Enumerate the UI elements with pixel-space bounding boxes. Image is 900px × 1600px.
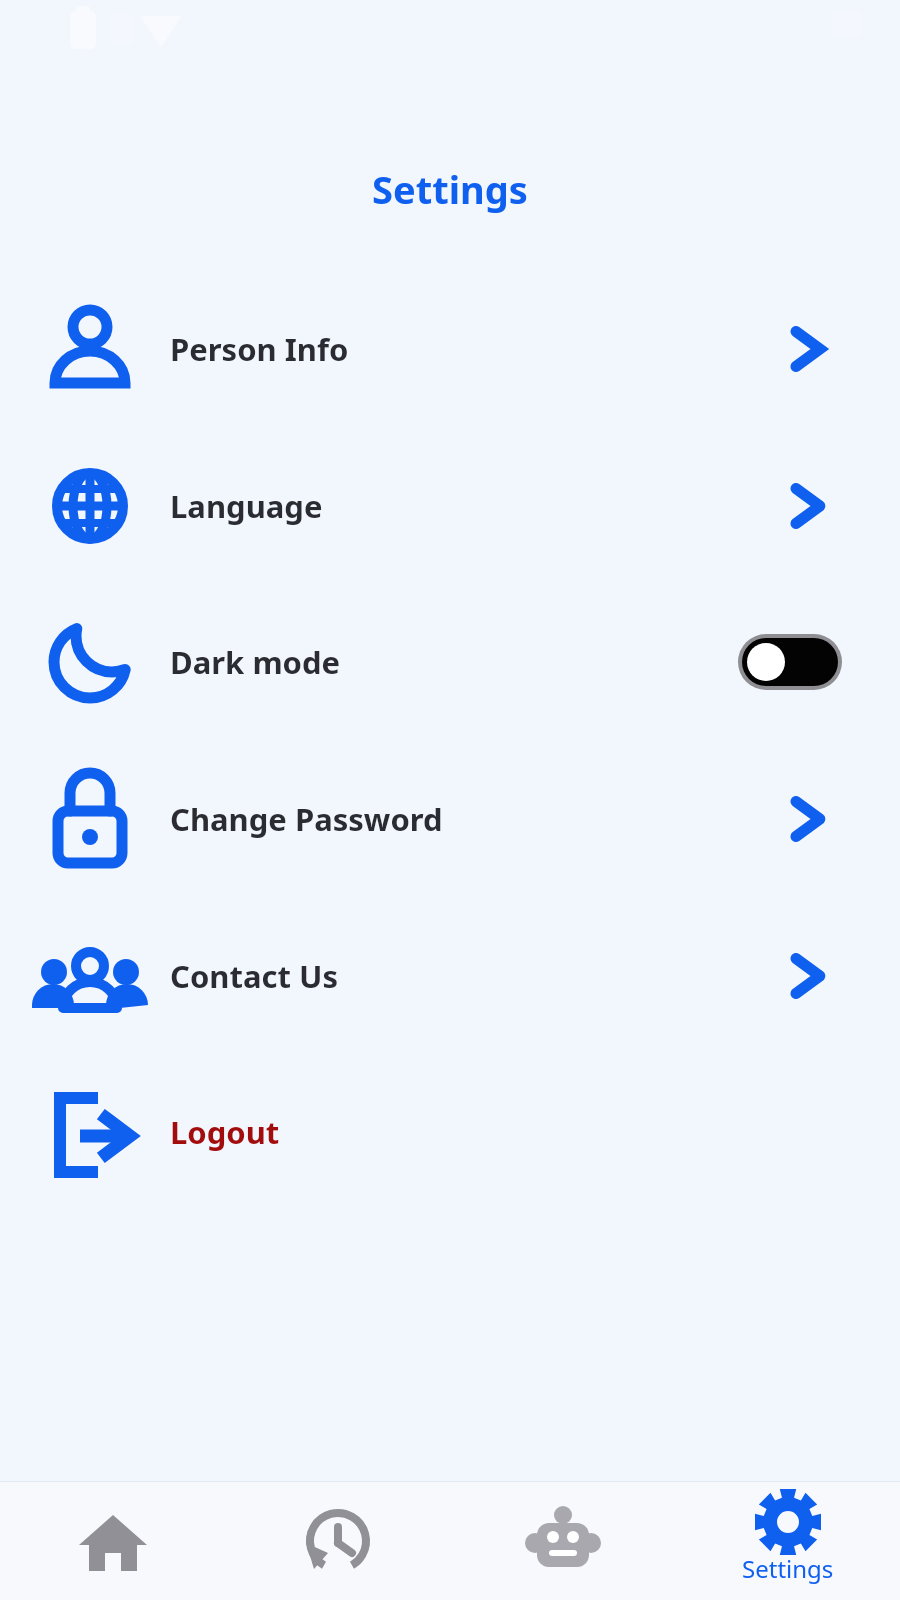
staticText: Language — [170, 485, 323, 527]
staticText: Person Info — [170, 328, 349, 370]
button[interactable]: Home — [0, 1482, 225, 1600]
staticText: Dark mode — [170, 641, 341, 683]
button[interactable]: Dark mode — [0, 605, 900, 719]
button[interactable]: Contact Us — [0, 919, 900, 1033]
staticText: Settings — [742, 1552, 834, 1585]
staticText: Logout — [170, 1111, 280, 1153]
button[interactable]: Assistant — [450, 1482, 675, 1600]
staticText: Contact Us — [170, 955, 338, 997]
staticText: Change Password — [170, 798, 443, 840]
button[interactable]: History — [225, 1482, 450, 1600]
button[interactable]: Logout — [0, 1075, 900, 1189]
button[interactable]: Change Password — [0, 762, 900, 876]
button[interactable]: Settings — [675, 1482, 900, 1600]
button[interactable]: Language — [0, 449, 900, 563]
button[interactable]: Person Info — [0, 292, 900, 406]
staticText: Settings — [0, 163, 900, 215]
button[interactable]: Dark mode toggle — [742, 638, 838, 686]
